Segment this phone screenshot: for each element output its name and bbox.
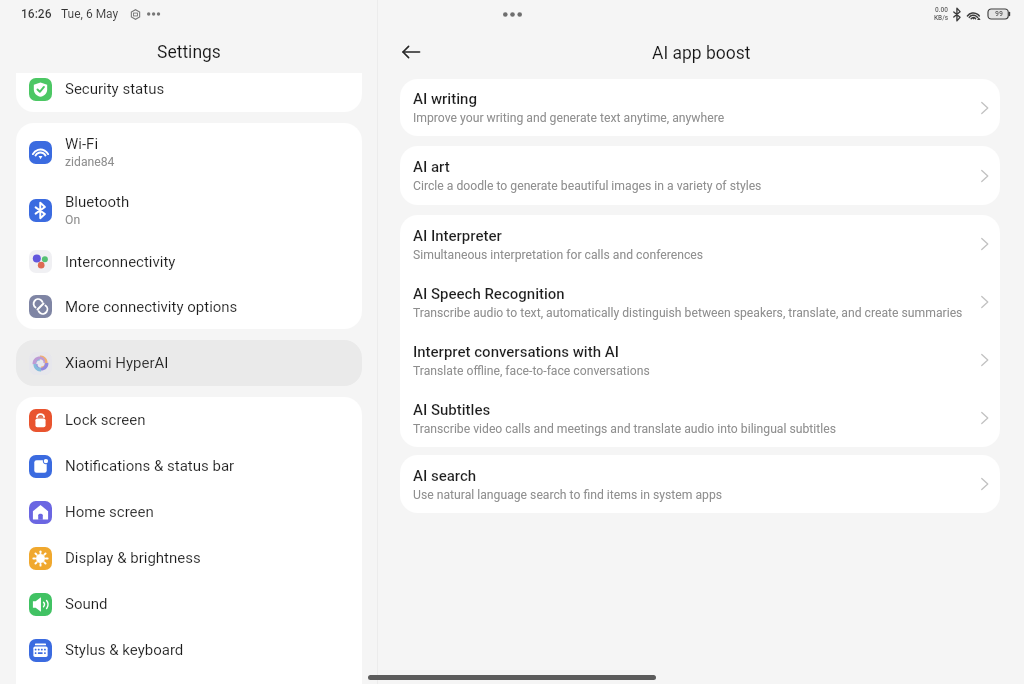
staticText: Wi-Fi xyxy=(65,135,99,153)
staticText: Interpret conversations with AI xyxy=(413,343,619,361)
staticText: 0.00 xyxy=(935,6,948,14)
button[interactable]: Stylus & keyboard xyxy=(16,627,362,673)
button[interactable]: AI Interpreter xyxy=(400,215,1000,273)
button[interactable]: Security status xyxy=(16,73,362,112)
staticText: Circle a doodle to generate beautiful im… xyxy=(413,179,762,193)
staticText: Interconnectivity xyxy=(65,253,176,271)
staticText: Notifications & status bar xyxy=(65,457,235,475)
staticText: AI app boost xyxy=(652,43,751,64)
button[interactable]: Sound xyxy=(16,581,362,627)
button[interactable]: AI writing xyxy=(400,79,1000,136)
staticText: Stylus & keyboard xyxy=(65,641,184,659)
staticText: Sound xyxy=(65,595,108,613)
staticText: 99 xyxy=(995,10,1003,18)
staticText: More connectivity options xyxy=(65,298,238,316)
button[interactable]: Home screen xyxy=(16,489,362,535)
staticText: AI search xyxy=(413,467,477,485)
staticText: KB/s xyxy=(934,14,949,22)
button[interactable]: Notifications & status bar xyxy=(16,443,362,489)
button[interactable]: Bluetooth xyxy=(16,181,362,239)
button[interactable]: AI art xyxy=(400,146,1000,205)
button[interactable]: Back xyxy=(394,35,428,69)
staticText: Lock screen xyxy=(65,411,146,429)
button[interactable]: More connectivity options xyxy=(16,284,362,329)
staticText: Display & brightness xyxy=(65,549,201,567)
staticText: Transcribe video calls and meetings and … xyxy=(413,422,836,436)
staticText: Simultaneous interpretation for calls an… xyxy=(413,248,704,262)
staticText: AI Subtitles xyxy=(413,401,491,419)
staticText: 16:26 xyxy=(21,7,52,21)
button[interactable]: AI search xyxy=(400,455,1000,513)
staticText: Translate offline, face-to-face conversa… xyxy=(413,364,650,378)
staticText: AI Speech Recognition xyxy=(413,285,565,303)
staticText: Security status xyxy=(65,80,165,98)
button[interactable]: Interconnectivity xyxy=(16,239,362,284)
staticText: Tue, 6 May xyxy=(61,7,119,21)
button[interactable]: AI Speech Recognition xyxy=(400,273,1000,331)
staticText: Use natural language search to find item… xyxy=(413,488,723,502)
staticText: Home screen xyxy=(65,503,154,521)
staticText: On xyxy=(65,213,81,227)
staticText: Settings xyxy=(157,42,221,63)
staticText: zidane84 xyxy=(65,155,115,169)
staticText: Xiaomi HyperAI xyxy=(65,354,169,372)
button[interactable]: Display & brightness xyxy=(16,535,362,581)
staticText: Transcribe audio to text, automatically … xyxy=(413,306,963,320)
button[interactable]: AI Subtitles xyxy=(400,389,1000,447)
staticText: Bluetooth xyxy=(65,193,130,211)
staticText: Improve your writing and generate text a… xyxy=(413,111,725,125)
button[interactable]: Xiaomi HyperAI xyxy=(16,340,362,386)
button[interactable]: Interpret conversations with AI xyxy=(400,331,1000,389)
staticText: AI writing xyxy=(413,90,477,108)
staticText: AI art xyxy=(413,158,450,176)
staticText: AI Interpreter xyxy=(413,227,502,245)
button[interactable]: Lock screen xyxy=(16,397,362,443)
button[interactable]: Wi-Fi xyxy=(16,123,362,181)
